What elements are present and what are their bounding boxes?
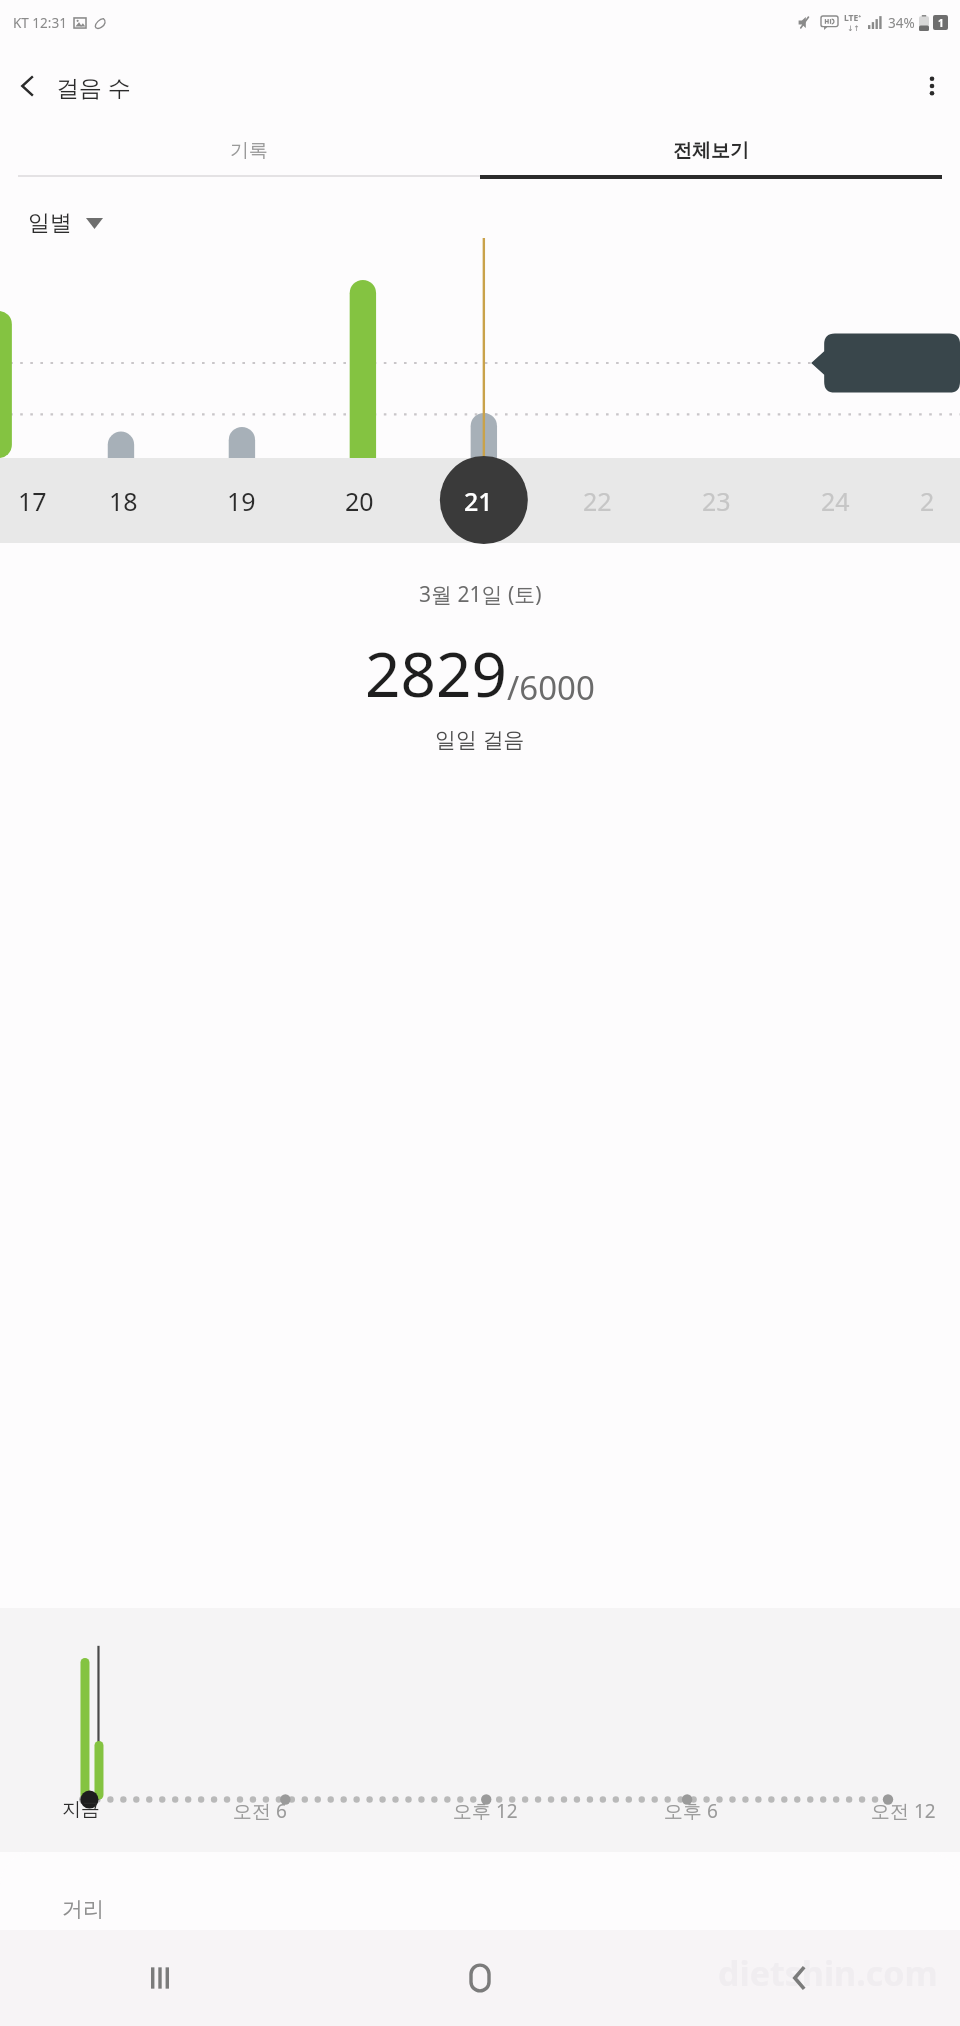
button[interactable]: 기록 — [18, 127, 480, 175]
staticText: 일일 걸음 — [435, 725, 525, 754]
button[interactable]: 23 — [657, 458, 776, 543]
staticText: 전체보기 — [673, 139, 749, 163]
staticText: 23 — [702, 484, 731, 518]
staticText: 오후 6 — [664, 1798, 718, 1824]
staticText: /6000 — [507, 665, 595, 710]
button[interactable]: Home — [320, 1930, 640, 2026]
button[interactable]: 21 — [419, 458, 538, 543]
staticText: 기록 — [230, 139, 268, 163]
button[interactable]: 2 — [895, 458, 960, 543]
staticText: 거리 — [62, 1896, 104, 1922]
button[interactable]: 걸음 수 — [56, 71, 131, 102]
staticText: 오후 12 — [453, 1798, 518, 1824]
staticText: 17 — [18, 484, 47, 518]
staticText: 2829 — [365, 631, 507, 715]
staticText: 3월 21일 (토) — [419, 580, 542, 609]
staticText: 오전 6 — [233, 1798, 287, 1824]
staticText: 20 — [345, 484, 374, 518]
button[interactable]: 19 — [182, 458, 300, 543]
button[interactable]: Recents — [0, 1930, 320, 2026]
staticText: 21 — [464, 484, 493, 518]
button[interactable]: More options — [904, 58, 960, 114]
staticText: 19 — [227, 484, 256, 518]
staticText: 1 — [938, 16, 944, 30]
staticText: 지금 — [62, 1798, 100, 1822]
staticText: 2 — [920, 484, 935, 518]
staticText: dietshin.com — [718, 1950, 938, 1996]
button[interactable]: 전체보기 — [480, 127, 942, 175]
staticText: 24 — [821, 484, 850, 518]
button[interactable]: 거리 — [0, 1852, 960, 1930]
button[interactable]: Back — [640, 1930, 960, 2026]
staticText: 34% — [888, 14, 915, 32]
button[interactable]: 일별 — [22, 205, 109, 241]
button[interactable]: 24 — [776, 458, 895, 543]
button[interactable]: Back — [0, 58, 56, 114]
staticText: 일별 — [28, 209, 72, 237]
button[interactable]: 18 — [64, 458, 182, 543]
staticText: 오전 12 — [871, 1798, 936, 1824]
staticText: 22 — [583, 484, 612, 518]
button[interactable]: 17 — [0, 458, 64, 543]
staticText: ↓↑ — [847, 24, 860, 33]
staticText: LTE⁺ — [844, 12, 862, 24]
staticText: KT 12:31 — [13, 14, 67, 32]
button[interactable]: 20 — [300, 458, 419, 543]
staticText: 18 — [109, 484, 138, 518]
button[interactable]: 22 — [538, 458, 657, 543]
